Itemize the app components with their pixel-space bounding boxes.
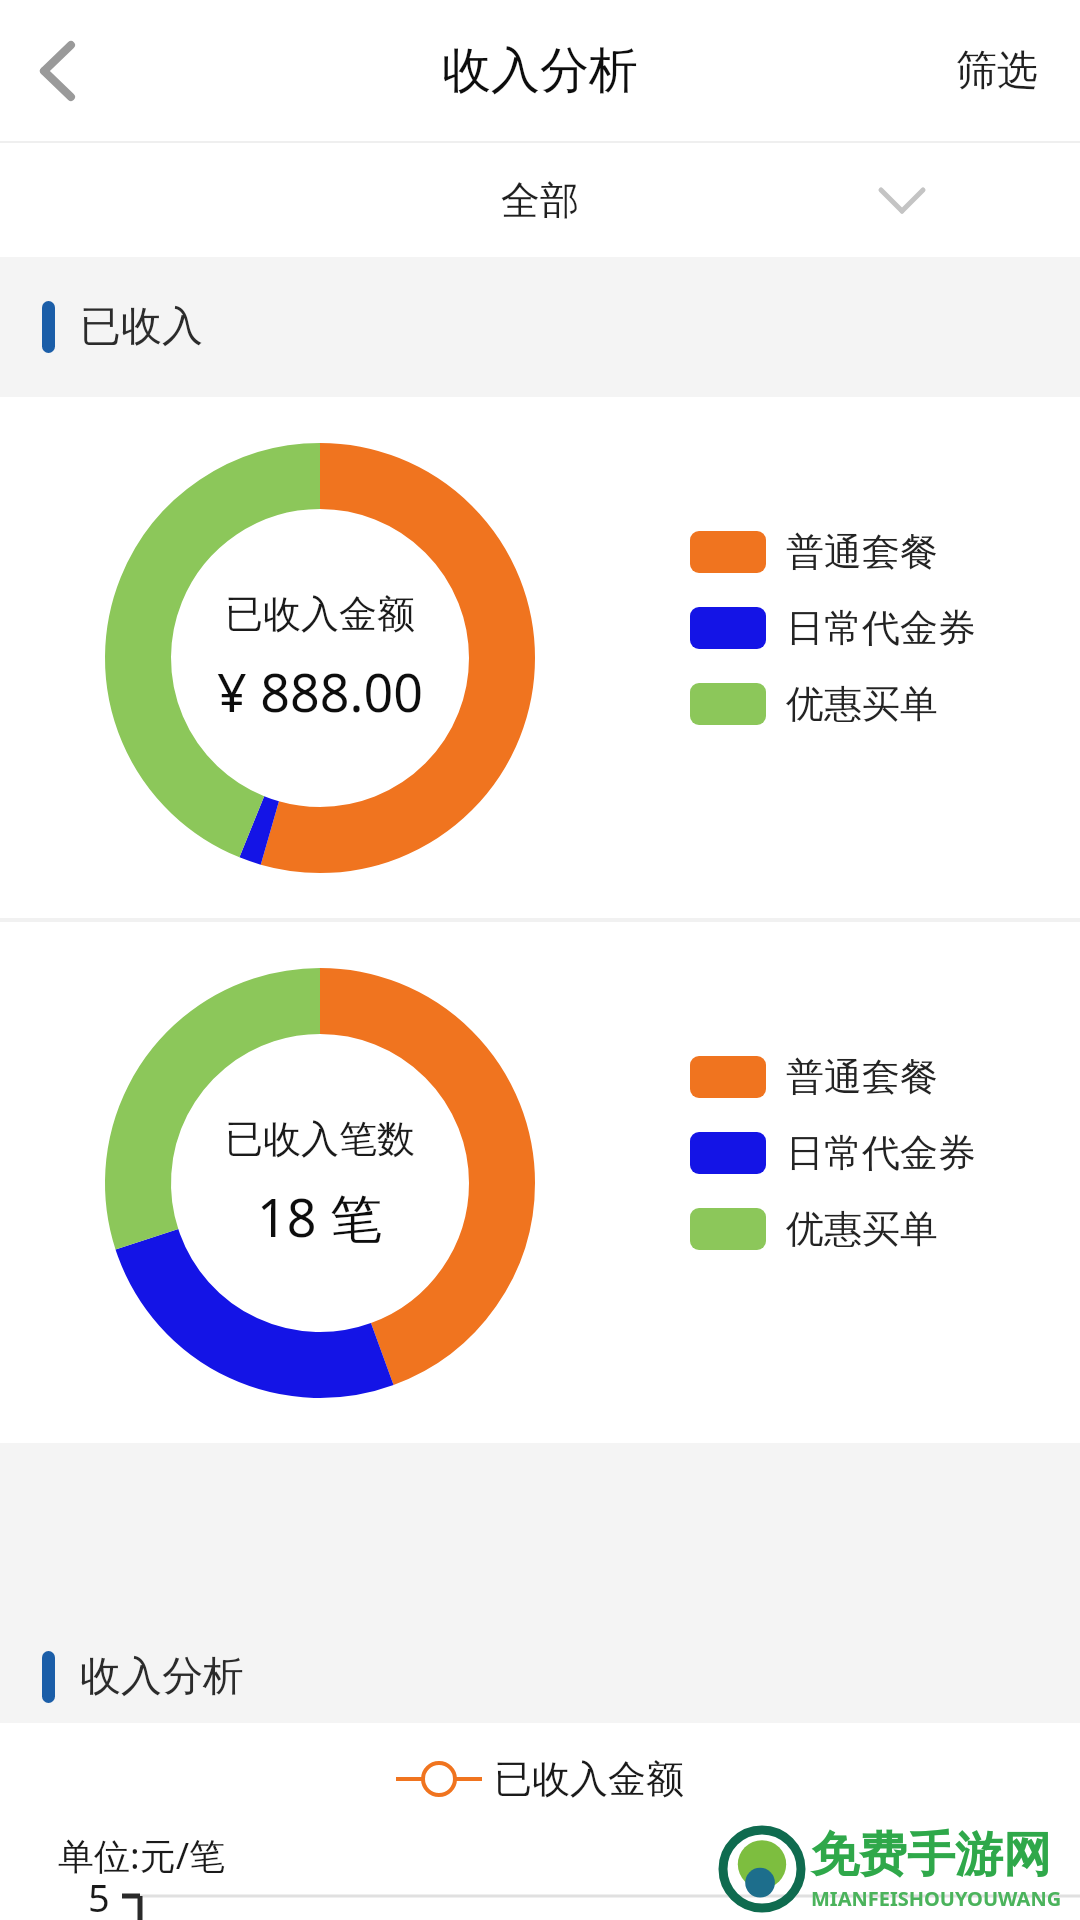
staticText: 18 笔	[257, 1181, 383, 1252]
button[interactable]: 优惠买单	[690, 1205, 938, 1253]
button[interactable]: 日常代金券	[690, 1129, 976, 1177]
staticText: 优惠买单	[786, 1205, 938, 1253]
staticText: 收入分析	[442, 40, 638, 102]
staticText: 收入分析	[80, 1651, 244, 1703]
staticText: 单位:元/笔	[58, 1831, 226, 1880]
button[interactable]: 普通套餐	[690, 1053, 938, 1101]
staticText: 免费手游网	[811, 1825, 1051, 1885]
staticText: 已收入笔数	[225, 1115, 415, 1163]
staticText: 日常代金券	[786, 604, 976, 652]
staticText: 已收入金额	[225, 590, 415, 638]
staticText: 全部	[501, 176, 579, 225]
staticText: ¥ 888.00	[217, 656, 423, 727]
button[interactable]: 筛选	[940, 25, 1054, 117]
staticText: 已收入金额	[494, 1755, 684, 1803]
staticText: 优惠买单	[786, 680, 938, 728]
staticText: 已收入	[80, 301, 203, 353]
staticText: 普通套餐	[786, 528, 938, 576]
staticText: 筛选	[956, 45, 1038, 97]
button[interactable]: 返回	[14, 29, 98, 113]
staticText: 普通套餐	[786, 1053, 938, 1101]
button[interactable]: 普通套餐	[690, 528, 938, 576]
button[interactable]: 优惠买单	[690, 680, 938, 728]
button[interactable]: 日常代金券	[690, 604, 976, 652]
staticText: 5	[88, 1871, 110, 1920]
button[interactable]: 全部	[0, 143, 1080, 257]
staticText: 日常代金券	[786, 1129, 976, 1177]
staticText: MIANFEISHOUYOUWANG	[811, 1885, 1062, 1912]
